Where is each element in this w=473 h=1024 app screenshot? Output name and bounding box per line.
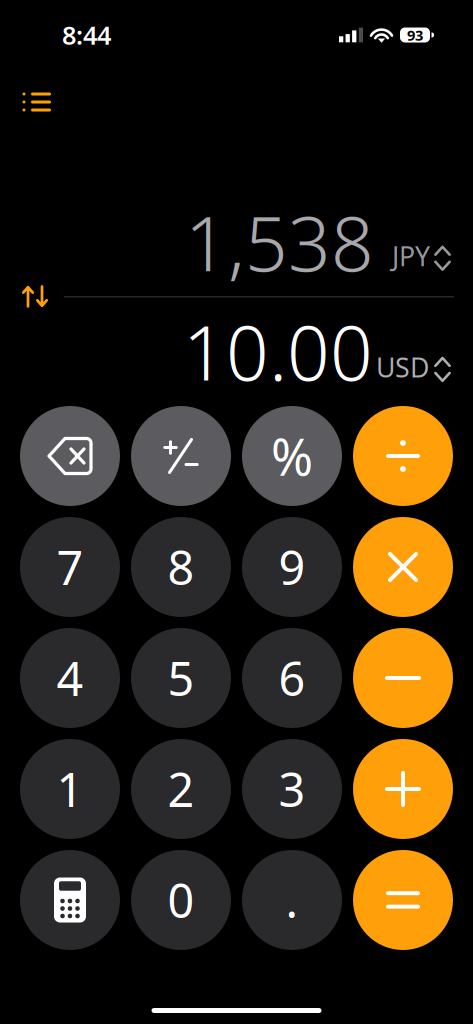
staticText: 4 xyxy=(56,647,83,709)
button[interactable]: Multiply xyxy=(353,517,453,617)
staticText: USD xyxy=(376,349,429,385)
button[interactable]: 9 xyxy=(242,517,342,617)
staticText: 7 xyxy=(56,536,83,598)
button[interactable]: Calculator xyxy=(20,850,120,950)
button[interactable]: 8 xyxy=(131,517,231,617)
button[interactable]: 5 xyxy=(131,628,231,728)
button[interactable]: Equals xyxy=(353,850,453,950)
staticText: 1,538 xyxy=(185,193,374,292)
staticText: 6 xyxy=(278,647,305,709)
staticText: 10.00 xyxy=(183,302,373,401)
staticText: 0 xyxy=(167,869,194,931)
staticText: JPY xyxy=(392,238,430,274)
button[interactable]: Decimal point xyxy=(242,850,342,950)
button[interactable]: Subtract xyxy=(353,628,453,728)
staticText: . xyxy=(285,869,298,931)
button[interactable]: Divide xyxy=(353,406,453,506)
staticText: 3 xyxy=(278,758,305,820)
staticText: 8:44 xyxy=(62,18,111,52)
staticText: 2 xyxy=(167,758,194,820)
staticText: 9 xyxy=(278,536,305,598)
button[interactable]: 0 xyxy=(131,850,231,950)
button[interactable]: Delete xyxy=(20,406,120,506)
staticText: 8 xyxy=(167,536,194,598)
button[interactable]: 2 xyxy=(131,739,231,839)
staticText: 93 xyxy=(407,25,423,45)
button[interactable]: 6 xyxy=(242,628,342,728)
button[interactable]: 3 xyxy=(242,739,342,839)
staticText: 5 xyxy=(167,647,194,709)
button[interactable]: 7 xyxy=(20,517,120,617)
staticText: % xyxy=(271,422,313,490)
staticText: 1 xyxy=(56,758,83,820)
button[interactable]: Currency list xyxy=(0,52,68,124)
button[interactable]: Toggle sign xyxy=(131,406,231,506)
button[interactable]: Add xyxy=(353,739,453,839)
button[interactable]: 4 xyxy=(20,628,120,728)
button[interactable]: Percent xyxy=(242,406,342,506)
button[interactable]: 1 xyxy=(20,739,120,839)
